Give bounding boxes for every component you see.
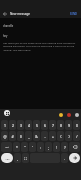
button[interactable]: 0 (73, 120, 80, 130)
button[interactable]: ? (61, 142, 68, 152)
staticText: ' (32, 145, 33, 150)
staticText: ABC (5, 157, 10, 160)
button[interactable]: & (33, 131, 40, 141)
button[interactable]: Emoji suggestion (66, 112, 71, 117)
staticText: 1 (4, 123, 6, 128)
button[interactable] (22, 153, 29, 163)
staticText: - (44, 134, 46, 139)
staticText: hey (3, 34, 8, 38)
button[interactable]: 1 (1, 120, 8, 130)
staticText: 7 (52, 123, 54, 128)
button[interactable]: , (14, 153, 21, 163)
staticText: Hey there! Just so you know you're only … (3, 41, 78, 52)
button[interactable]: ' (29, 142, 36, 152)
staticText: 4 (28, 123, 30, 128)
staticText: SEND (70, 12, 77, 16)
button[interactable]: 3 (17, 120, 24, 130)
button[interactable]: # (9, 131, 16, 141)
staticText: 0 (76, 123, 78, 128)
button[interactable]: - (41, 131, 48, 141)
staticText: , (17, 156, 18, 161)
button[interactable]: SEND (66, 9, 81, 19)
button[interactable]: 6 (41, 120, 48, 130)
staticText: 5 (36, 123, 38, 128)
staticText: + (52, 134, 54, 139)
button[interactable]: ! (53, 142, 60, 152)
staticText: 9 (68, 123, 70, 128)
staticText: 2 (12, 123, 14, 128)
staticText: @ (3, 134, 7, 139)
button[interactable]: Back (0, 9, 10, 19)
staticText: # (11, 134, 14, 139)
staticText: 6 (44, 123, 46, 128)
button[interactable]: 9 (65, 120, 72, 130)
button[interactable]: : (37, 142, 44, 152)
staticText: ! (56, 145, 57, 150)
staticText: New message (10, 12, 30, 16)
staticText: & (35, 134, 38, 139)
button[interactable]: @ (1, 131, 8, 141)
staticText: ) (68, 134, 70, 139)
button[interactable]: 8 (57, 120, 64, 130)
staticText: " (24, 145, 26, 150)
button[interactable]: " (21, 142, 28, 152)
button[interactable]: _ (25, 131, 32, 141)
button[interactable]: ; (45, 142, 52, 152)
staticText: * (16, 145, 18, 150)
staticText: chanelle (3, 24, 14, 28)
button[interactable]: . (61, 153, 68, 163)
staticText: : (40, 145, 41, 150)
button[interactable]: 7 (49, 120, 56, 130)
staticText: ; (48, 145, 49, 150)
staticText: _ (28, 134, 30, 139)
staticText: 8 (60, 123, 62, 128)
button[interactable]: ( (57, 131, 64, 141)
button[interactable]: 4 (25, 120, 32, 130)
button[interactable]: $ (17, 131, 24, 141)
button[interactable] (69, 153, 80, 163)
button[interactable]: Emoji suggestion (74, 112, 79, 117)
staticText: $ (20, 134, 22, 139)
staticText: ( (60, 134, 62, 139)
staticText: 3 (20, 123, 22, 128)
button[interactable]: Emoji suggestion (58, 112, 63, 117)
button[interactable] (69, 142, 80, 152)
staticText: . (64, 156, 65, 161)
button[interactable]: ABC (1, 153, 13, 163)
button[interactable]: + (49, 131, 56, 141)
button[interactable]: * (13, 142, 20, 152)
staticText: =\< (5, 146, 9, 149)
staticText: / (76, 134, 78, 139)
button[interactable]: / (73, 131, 80, 141)
button[interactable]: 5 (33, 120, 40, 130)
button[interactable]: Open keyboard menu (4, 110, 10, 116)
button[interactable]: =\< (1, 142, 12, 152)
staticText: ? (64, 145, 66, 150)
button[interactable]: ) (65, 131, 72, 141)
button[interactable]: 2 (9, 120, 16, 130)
